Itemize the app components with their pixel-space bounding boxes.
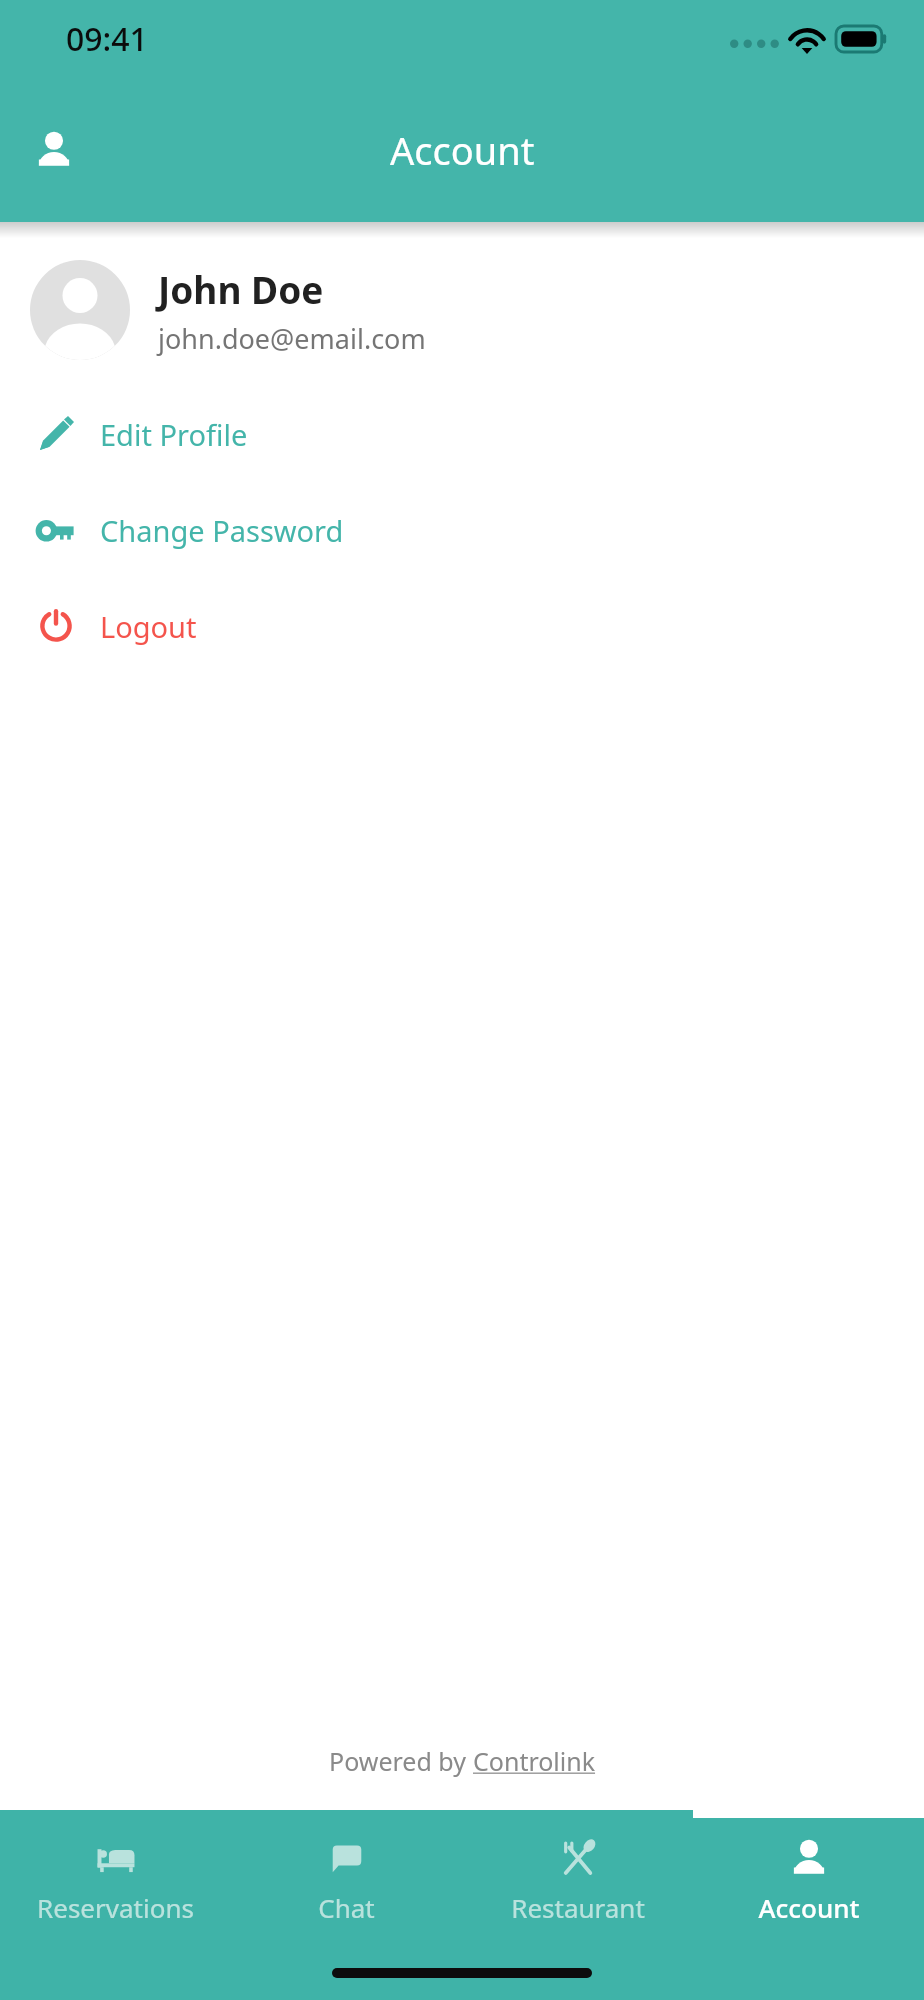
staticText: Reservations [37, 1890, 194, 1925]
staticText: Chat [318, 1890, 375, 1925]
button[interactable]: Account [693, 1824, 924, 2000]
staticText: Powered by [329, 1744, 473, 1778]
button[interactable]: Edit Profile [0, 406, 924, 462]
staticText: Edit Profile [100, 415, 248, 454]
staticText: John Doe [158, 264, 324, 314]
button[interactable]: Reservations [0, 1824, 231, 2000]
staticText: 09:41 [66, 17, 148, 61]
staticText: Account [390, 124, 535, 176]
staticText: Change Password [100, 511, 344, 550]
button[interactable]: Change Password [0, 502, 924, 558]
button[interactable]: Chat [231, 1824, 462, 2000]
staticText: Restaurant [511, 1890, 645, 1925]
staticText: Logout [100, 607, 197, 646]
button[interactable]: Controlink [473, 1744, 596, 1778]
button[interactable]: Profile [10, 106, 98, 194]
staticText: Account [758, 1890, 860, 1925]
staticText: john.doe@email.com [158, 320, 426, 357]
button[interactable]: Logout [0, 598, 924, 654]
button[interactable]: Restaurant [462, 1824, 693, 2000]
